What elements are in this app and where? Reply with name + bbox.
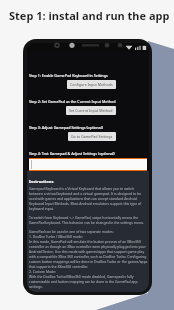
staticText: Step 1: instal and run the app xyxy=(9,8,170,23)
staticText: Set Current Input Method xyxy=(69,108,113,113)
button[interactable]: Go to GamePad Settings xyxy=(68,132,116,141)
staticText: Step 4: Test Gamepad & Adjust Settings (… xyxy=(29,151,115,156)
staticText: Go to GamePad Settings xyxy=(71,134,113,139)
staticText: Gamepad Keyboard is a Virtual Keyboard t… xyxy=(29,186,148,211)
button[interactable]: Set Current Input Method xyxy=(66,106,116,115)
staticText: Step 3: Adjust Gamepad Settings (optiona… xyxy=(29,125,116,130)
staticText: GamePad can be used in one of two separa… xyxy=(29,229,148,289)
staticText: Instructions xyxy=(29,179,54,184)
button[interactable] xyxy=(29,158,147,171)
staticText: To switch from Keyboard <-> GamePad, swi… xyxy=(29,215,148,225)
staticText: Step 1: Enable GamePad Keyboard in Setti… xyxy=(29,73,116,78)
staticText: Configure Input Methods xyxy=(70,82,113,87)
button[interactable]: Configure Input Methods xyxy=(67,80,116,89)
staticText: Step 2: Set GamePad as the Current Input… xyxy=(29,99,116,104)
